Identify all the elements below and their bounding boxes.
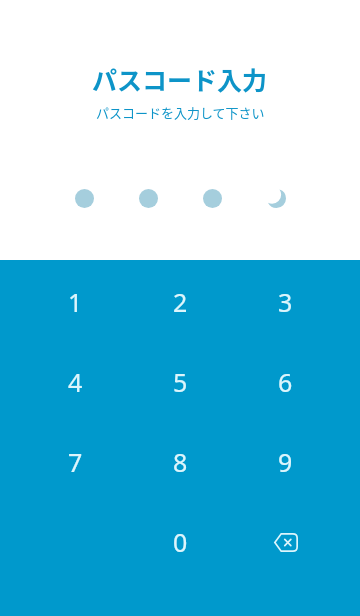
button[interactable]: 6 [233, 342, 338, 422]
other: Backspace [274, 533, 298, 552]
staticText: 2 [173, 285, 188, 319]
staticText: 4 [68, 365, 83, 399]
button[interactable]: 3 [233, 262, 338, 342]
staticText: パスコードを入力して下さい [96, 103, 265, 122]
staticText: 3 [278, 285, 293, 319]
staticText: パスコード入力 [92, 61, 268, 97]
button[interactable]: 9 [233, 422, 338, 502]
button[interactable]: Backspace [233, 502, 338, 582]
staticText: 0 [173, 525, 188, 559]
staticText: 6 [278, 365, 293, 399]
button[interactable]: 1 [22, 262, 128, 342]
staticText: 8 [173, 445, 188, 479]
button[interactable]: 4 [22, 342, 128, 422]
staticText: 5 [173, 365, 188, 399]
button[interactable]: 8 [128, 422, 233, 502]
button[interactable]: 5 [128, 342, 233, 422]
button[interactable]: 2 [128, 262, 233, 342]
staticText: 9 [278, 445, 293, 479]
button[interactable]: 7 [22, 422, 128, 502]
button[interactable]: 0 [128, 502, 233, 582]
staticText: 1 [68, 285, 83, 319]
staticText: 7 [68, 445, 83, 479]
